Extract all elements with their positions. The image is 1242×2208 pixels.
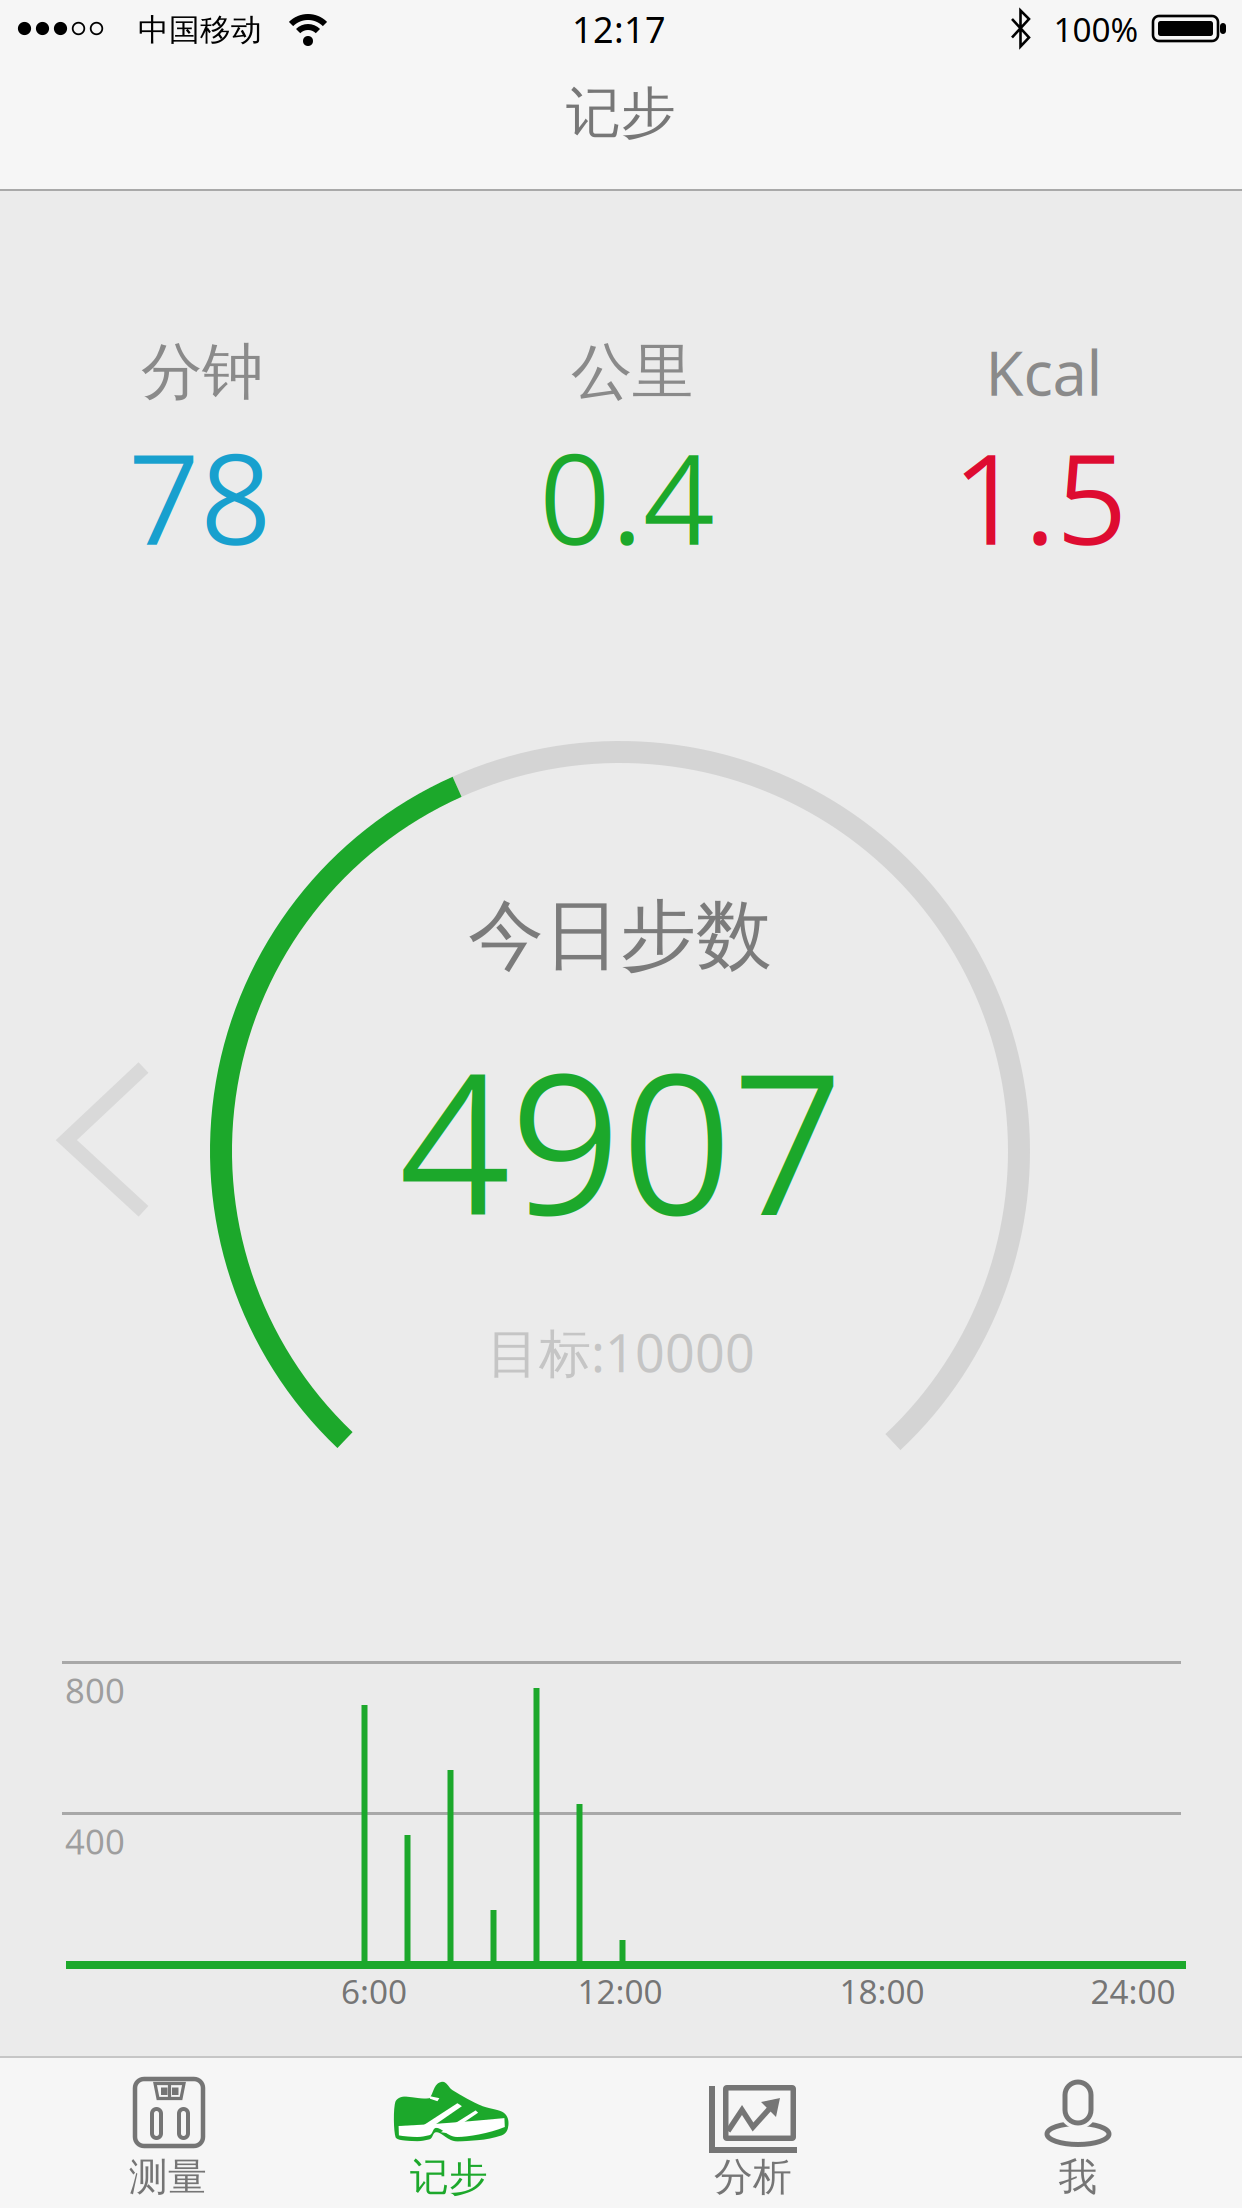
- staticText: 记步: [410, 2153, 488, 2201]
- staticText: 我: [1058, 2153, 1097, 2201]
- staticText: Kcal: [985, 331, 1102, 413]
- staticText: 18:00: [839, 1969, 924, 2013]
- staticText: 公里: [571, 334, 693, 410]
- staticText: 12:17: [572, 5, 666, 53]
- staticText: 测量: [129, 2153, 207, 2201]
- button[interactable]: 我: [938, 2057, 1218, 2207]
- button[interactable]: Previous day: [46, 1060, 166, 1220]
- staticText: 记步: [566, 79, 676, 146]
- staticText: 12:00: [577, 1969, 662, 2013]
- staticText: 400: [65, 1818, 125, 1864]
- staticText: 中国移动: [138, 11, 262, 49]
- staticText: 800: [65, 1667, 125, 1713]
- staticText: 24:00: [1090, 1969, 1175, 2013]
- staticText: 4907: [399, 1006, 843, 1271]
- staticText: 6:00: [341, 1969, 407, 2013]
- staticText: 78: [128, 411, 272, 581]
- staticText: 100%: [1053, 7, 1138, 51]
- staticText: 分钟: [141, 334, 263, 410]
- staticText: 今日步数: [468, 889, 772, 983]
- staticText: 目标:10000: [487, 1317, 755, 1387]
- button[interactable]: 测量: [28, 2057, 308, 2207]
- button[interactable]: 分析: [613, 2057, 893, 2207]
- staticText: 1.5: [952, 411, 1128, 581]
- staticText: 0.4: [539, 411, 715, 581]
- button[interactable]: 记步: [309, 2057, 589, 2207]
- staticText: 分析: [714, 2153, 792, 2201]
